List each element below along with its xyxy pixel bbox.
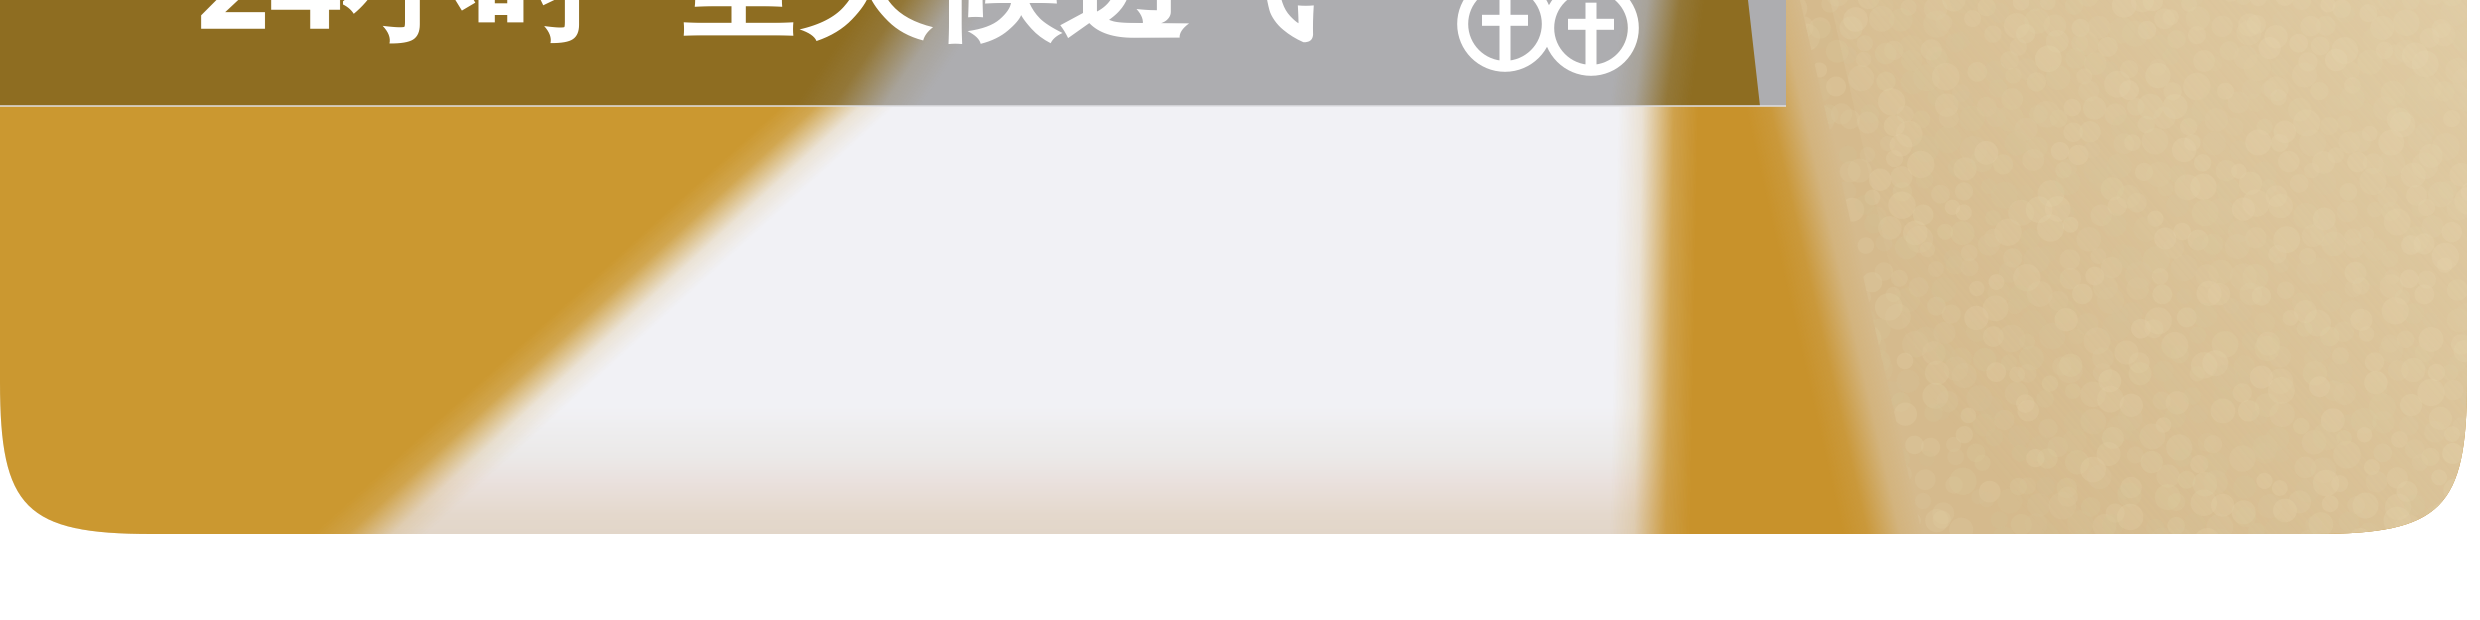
staticText: 24小时 全天候透气: [196, 0, 1314, 64]
